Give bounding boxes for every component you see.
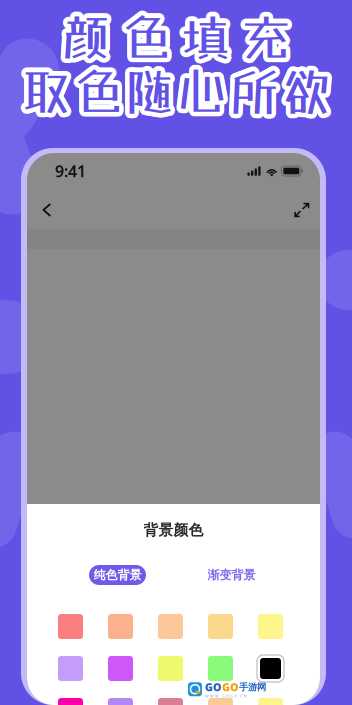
button[interactable]: Colour swatch	[158, 698, 183, 705]
button[interactable]: Colour swatch	[108, 614, 133, 639]
staticText: 随	[127, 67, 176, 125]
button[interactable]: Colour swatch	[58, 698, 83, 705]
staticText: 所	[225, 64, 274, 122]
button[interactable]: Back	[30, 193, 64, 227]
staticText: 颜	[61, 13, 110, 71]
staticText: 色	[73, 62, 122, 120]
staticText: 填	[186, 9, 235, 68]
staticText: 取	[21, 62, 70, 120]
staticText: 所	[229, 62, 278, 120]
staticText: 填	[178, 11, 227, 69]
staticText: 9:41	[55, 160, 86, 182]
staticText: 填	[180, 4, 229, 62]
staticText: 所	[234, 62, 283, 120]
staticText: 色	[78, 62, 127, 120]
staticText: 填	[178, 5, 227, 63]
button[interactable]: 渐变背景	[203, 565, 260, 585]
staticText: 颜	[59, 4, 108, 62]
staticText: 随	[123, 58, 172, 117]
staticText: 充	[238, 11, 287, 69]
staticText: 取	[19, 58, 68, 117]
staticText: 所	[234, 64, 283, 122]
staticText: 欲	[283, 67, 332, 125]
staticText: 欲	[279, 66, 328, 124]
staticText: W W W . G O G O . C N	[205, 693, 247, 698]
staticText: 填	[177, 9, 226, 68]
button[interactable]: Colour swatch	[258, 656, 283, 681]
staticText: 心	[180, 58, 229, 117]
staticText: 心	[181, 65, 230, 123]
staticText: 欲	[280, 58, 329, 116]
staticText: 色	[73, 67, 122, 125]
staticText: 所	[225, 61, 274, 119]
staticText: 填	[186, 7, 235, 65]
staticText: 颜	[60, 12, 109, 71]
staticText: 色	[69, 62, 118, 120]
staticText: 随	[129, 59, 178, 118]
staticText: 颜	[66, 8, 115, 66]
staticText: 随	[130, 62, 179, 120]
staticText: 心	[174, 65, 223, 123]
staticText: 色	[75, 67, 124, 125]
staticText: 心	[177, 58, 226, 116]
button[interactable]: Colour swatch	[208, 698, 233, 705]
button[interactable]: Colour swatch	[208, 614, 233, 639]
staticText: 欲	[278, 65, 327, 123]
staticText: 填	[186, 8, 235, 66]
staticText: 色	[126, 7, 175, 65]
staticText: 色	[71, 58, 120, 117]
staticText: 随	[124, 67, 173, 125]
staticText: 所	[231, 58, 280, 116]
staticText: 随	[122, 65, 171, 123]
staticText: 欲	[277, 64, 326, 122]
staticText: 心	[173, 62, 222, 120]
staticText: 所	[233, 65, 282, 123]
staticText: 所	[228, 58, 277, 116]
staticText: 心	[181, 59, 230, 118]
button[interactable]: Colour swatch	[208, 656, 233, 681]
staticText: 色	[124, 12, 173, 70]
staticText: 欲	[281, 62, 330, 120]
staticText: 欲	[284, 58, 333, 117]
staticText: 取	[24, 66, 73, 124]
staticText: 取	[26, 64, 75, 122]
button[interactable]: Full screen	[285, 193, 319, 227]
staticText: 随	[129, 65, 178, 123]
button[interactable]: Colour swatch	[58, 656, 83, 681]
staticText: 欲	[277, 61, 326, 119]
staticText: 随	[127, 58, 176, 116]
staticText: GO	[205, 680, 222, 694]
button[interactable]: Colour swatch	[108, 698, 133, 705]
staticText: 填	[185, 11, 234, 69]
staticText: 取	[25, 59, 74, 118]
staticText: 色	[117, 9, 166, 68]
staticText: 充	[245, 5, 294, 63]
button[interactable]: Colour swatch	[258, 614, 283, 639]
button[interactable]: Colour swatch	[158, 656, 183, 681]
staticText: 取	[24, 58, 73, 117]
staticText: 取	[26, 62, 75, 120]
button[interactable]: Colour swatch	[58, 614, 83, 639]
staticText: 充	[240, 12, 289, 71]
staticText: 色	[77, 65, 126, 123]
staticText: 欲	[277, 62, 326, 120]
button[interactable]: Colour swatch	[108, 656, 133, 681]
staticText: 随	[125, 62, 174, 120]
staticText: 充	[243, 12, 292, 71]
staticText: 充	[243, 4, 292, 62]
button[interactable]: Colour swatch	[258, 698, 283, 705]
staticText: 取	[26, 61, 75, 119]
staticText: 心	[173, 64, 222, 122]
staticText: 随	[124, 58, 173, 116]
staticText: 心	[177, 67, 226, 125]
staticText: 填	[184, 4, 233, 62]
staticText: 所	[234, 61, 283, 119]
staticText: GO	[222, 680, 239, 694]
staticText: 填	[180, 12, 229, 71]
button[interactable]: Colour swatch	[158, 614, 183, 639]
staticText: 取	[18, 59, 67, 118]
staticText: 所	[229, 58, 278, 116]
staticText: 随	[121, 62, 170, 120]
staticText: 随	[130, 61, 179, 119]
button[interactable]: 纯色背景	[89, 565, 146, 585]
